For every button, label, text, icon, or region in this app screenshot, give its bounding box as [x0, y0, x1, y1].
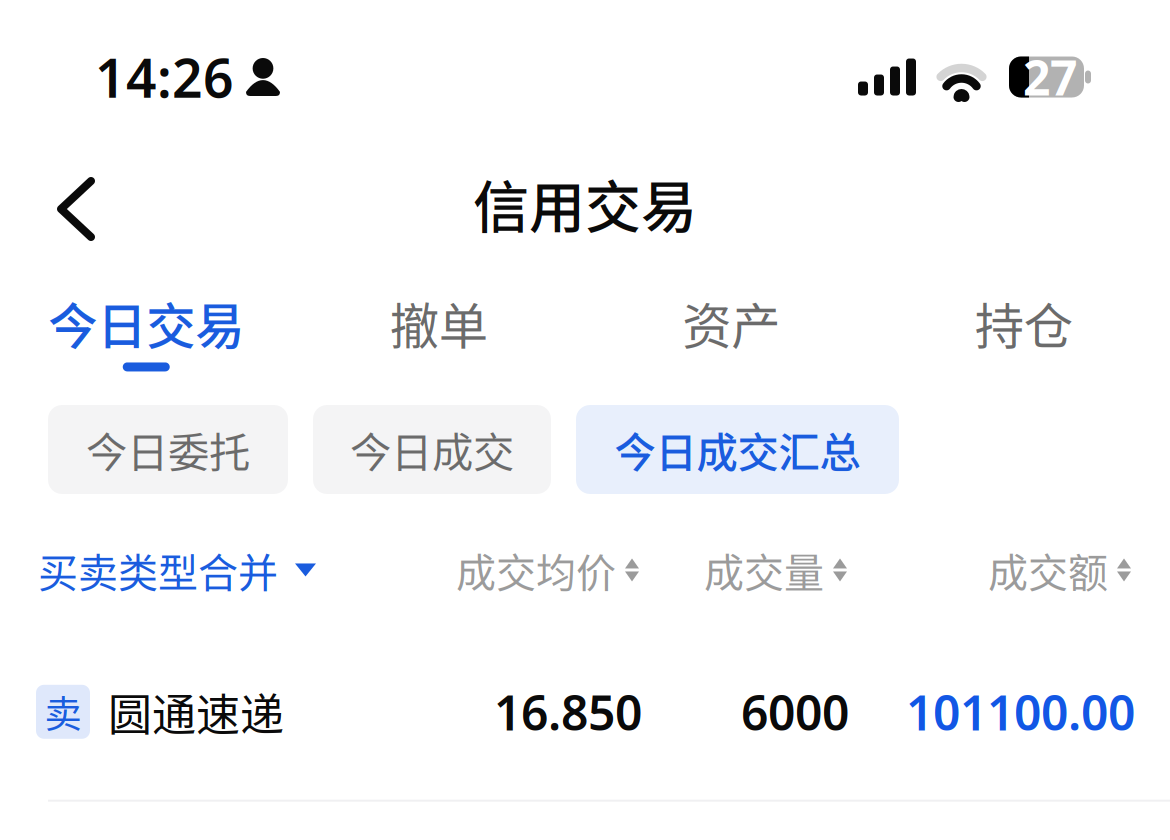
button[interactable]: 买卖类型合并 — [38, 541, 316, 599]
staticText: 持仓 — [975, 287, 1073, 358]
staticText: 14:26 — [95, 42, 234, 112]
staticText: 今日成交汇总 — [614, 420, 860, 479]
staticText: 成交量 — [704, 541, 824, 599]
button[interactable]: 今日成交汇总 — [576, 405, 899, 494]
staticText: 资产 — [682, 287, 780, 358]
button[interactable]: 今日交易 — [0, 252, 292, 386]
staticText: 圆通速递 — [108, 680, 284, 744]
button[interactable]: 今日成交 — [313, 405, 551, 494]
button[interactable]: 成交量 — [704, 541, 847, 599]
staticText: 成交额 — [988, 541, 1108, 599]
button[interactable]: 成交额 — [988, 541, 1131, 599]
button[interactable]: 成交均价 — [456, 541, 639, 599]
button[interactable]: 资产 — [585, 252, 877, 386]
staticText: 16.850 — [494, 680, 642, 744]
staticText: 撤单 — [390, 287, 488, 358]
button[interactable]: 持仓 — [877, 252, 1170, 386]
staticText: 6000 — [741, 680, 849, 744]
button[interactable]: Back — [0, 151, 119, 255]
staticText: 今日委托 — [86, 420, 250, 479]
staticText: 今日成交 — [350, 420, 514, 479]
staticText: 卖 — [44, 685, 81, 739]
staticText: 27 — [1023, 45, 1077, 109]
staticText: 信用交易 — [473, 162, 697, 244]
staticText: 成交均价 — [456, 541, 616, 599]
staticText: 101100.00 — [906, 680, 1135, 744]
button[interactable]: 撤单 — [292, 252, 585, 386]
button[interactable]: 今日委托 — [48, 405, 288, 494]
staticText: 买卖类型合并 — [38, 541, 278, 599]
staticText: 今日交易 — [48, 287, 244, 358]
